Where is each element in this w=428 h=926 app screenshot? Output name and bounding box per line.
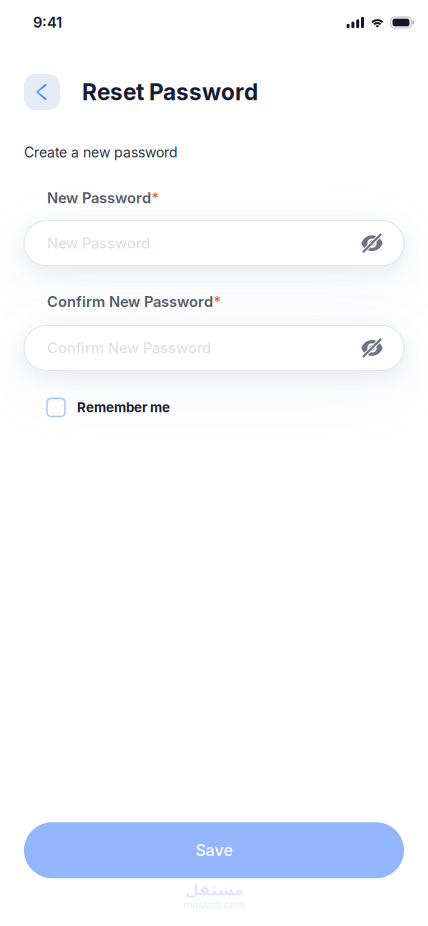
staticText: Confirm New Password	[47, 339, 211, 357]
staticText: Confirm New Password	[47, 293, 213, 310]
button[interactable]: Save	[24, 822, 404, 878]
staticText: 9:41	[33, 14, 62, 31]
staticText: Save	[195, 841, 232, 860]
staticText: Remember me	[77, 399, 170, 415]
staticText: New Password	[47, 189, 151, 207]
button[interactable]: Show New Password	[354, 224, 390, 262]
staticText: Reset Password	[82, 78, 258, 106]
button[interactable]: Remember me	[47, 398, 170, 416]
staticText: *	[213, 293, 220, 310]
button[interactable]: Back	[24, 74, 60, 110]
staticText: mostaql.com	[183, 899, 244, 911]
staticText: New Password	[47, 234, 150, 252]
staticText: *	[151, 189, 158, 207]
staticText: مستقل	[184, 880, 243, 899]
button[interactable]: Show Confirm New Password	[354, 329, 390, 367]
staticText: Create a new password	[24, 144, 178, 161]
